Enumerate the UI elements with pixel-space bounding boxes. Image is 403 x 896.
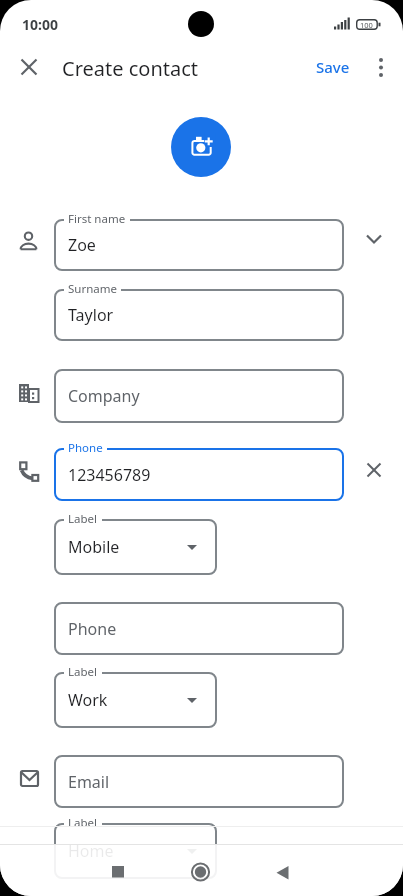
button[interactable]: Home bbox=[54, 823, 217, 879]
staticText: Save bbox=[316, 57, 350, 77]
staticText: Label bbox=[68, 664, 98, 680]
button[interactable] bbox=[176, 846, 224, 894]
staticText: Home bbox=[68, 840, 114, 862]
button[interactable]: Phone bbox=[54, 602, 344, 655]
button[interactable] bbox=[258, 846, 306, 894]
button[interactable]: Taylor bbox=[54, 289, 344, 341]
button[interactable] bbox=[360, 456, 388, 484]
staticText: Taylor bbox=[68, 304, 114, 326]
staticText: Surname bbox=[68, 281, 117, 297]
staticText: Label bbox=[68, 815, 98, 831]
button[interactable]: Work bbox=[54, 672, 217, 728]
staticText: 123456789 bbox=[68, 464, 151, 486]
button[interactable] bbox=[13, 51, 45, 83]
staticText: Company bbox=[68, 385, 140, 407]
staticText: Label bbox=[68, 511, 98, 527]
staticText: Work bbox=[68, 689, 108, 711]
staticText: Zoe bbox=[68, 234, 96, 256]
staticText: Mobile bbox=[68, 536, 120, 558]
button[interactable]: 123456789 bbox=[54, 448, 344, 501]
button[interactable]: Zoe bbox=[54, 219, 344, 271]
button[interactable] bbox=[94, 846, 142, 894]
staticText: 100 bbox=[360, 20, 373, 30]
staticText: Phone bbox=[68, 440, 103, 456]
button[interactable]: Email bbox=[54, 755, 344, 808]
button[interactable]: Mobile bbox=[54, 519, 217, 575]
staticText: Email bbox=[68, 771, 110, 793]
button[interactable]: Company bbox=[54, 369, 344, 423]
button[interactable] bbox=[360, 225, 388, 253]
button[interactable] bbox=[171, 117, 231, 177]
staticText: First name bbox=[68, 211, 126, 227]
staticText: Phone bbox=[68, 618, 117, 640]
button[interactable] bbox=[367, 53, 395, 81]
staticText: Create contact bbox=[62, 55, 199, 82]
staticText: 10:00 bbox=[22, 15, 58, 34]
button[interactable]: Save bbox=[308, 53, 358, 81]
